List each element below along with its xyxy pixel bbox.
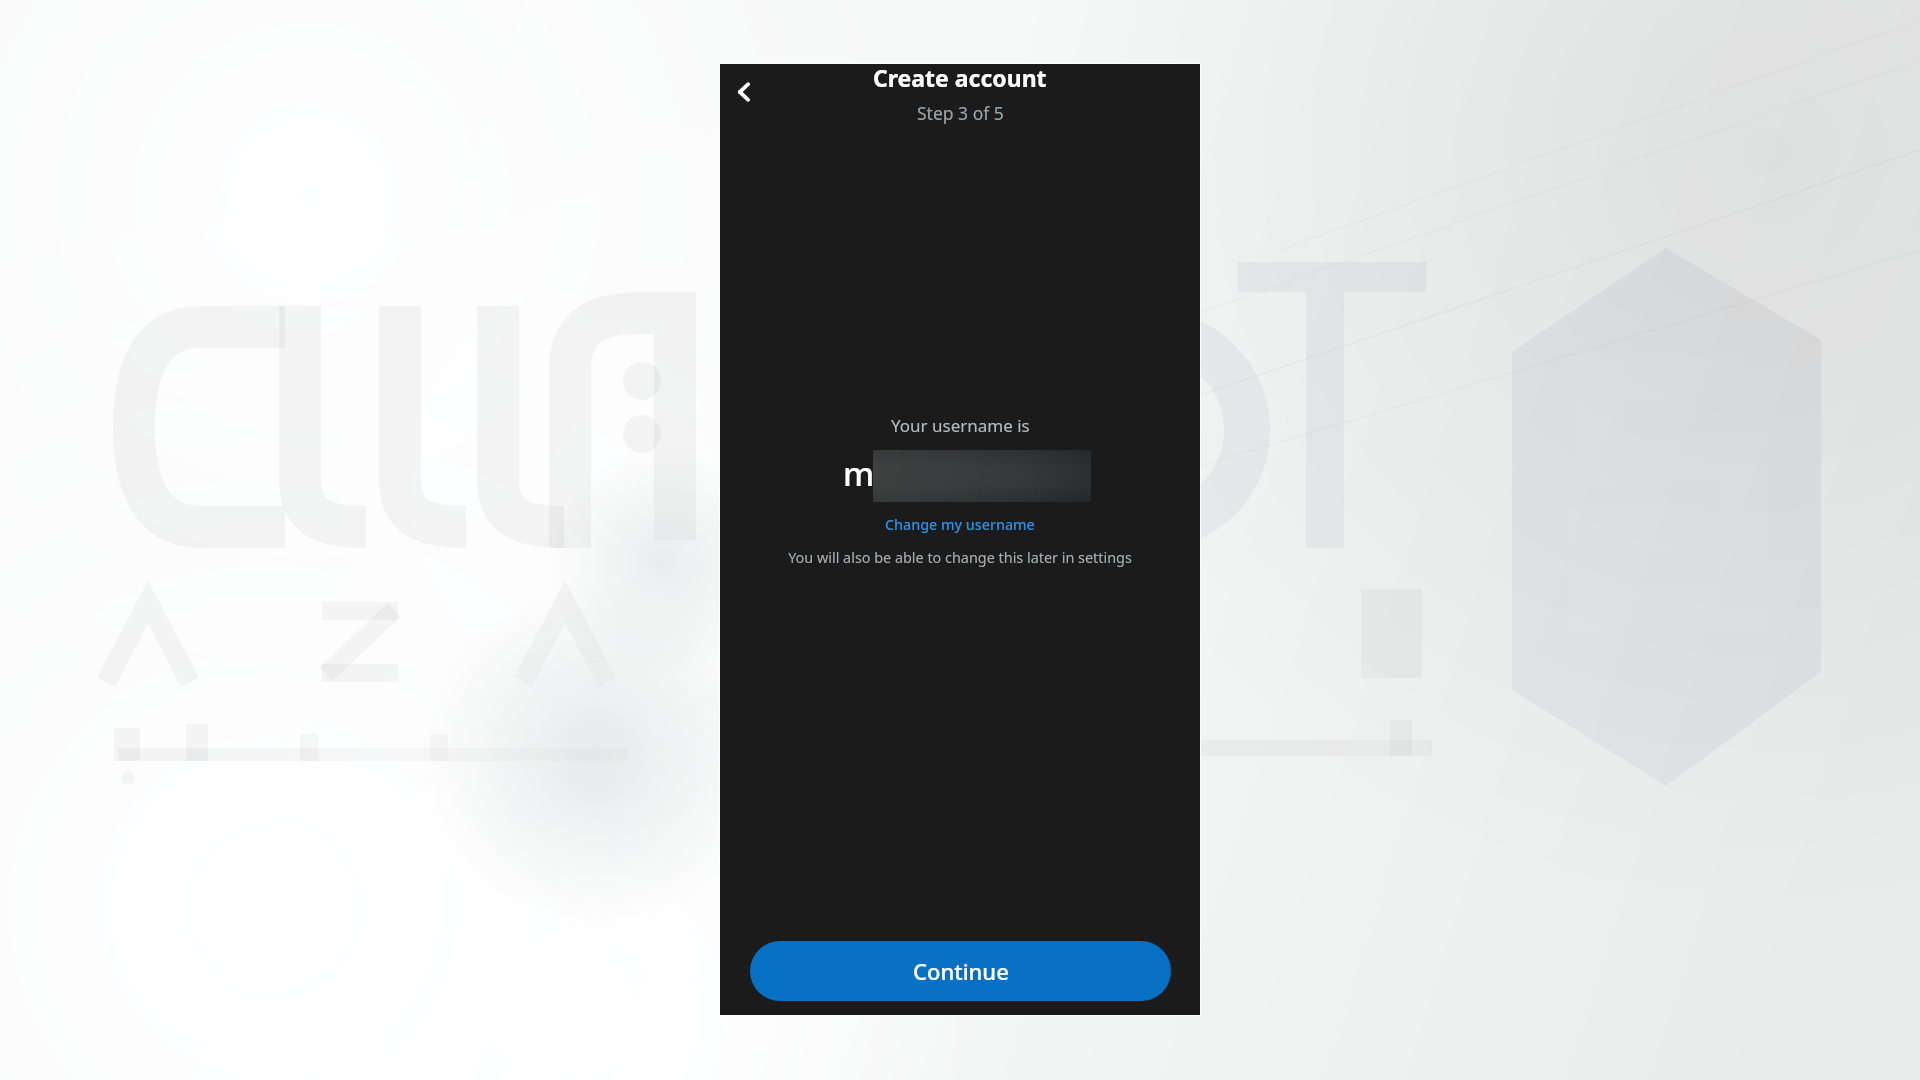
staticText: m	[843, 451, 875, 496]
staticText: Step 3 of 5	[917, 101, 1004, 125]
staticText: Change my username	[885, 515, 1035, 534]
button[interactable]: Change my username	[879, 512, 1041, 537]
button[interactable]: Continue	[750, 941, 1171, 1001]
staticText: You will also be able to change this lat…	[788, 548, 1132, 568]
button[interactable]: Back	[724, 72, 764, 112]
staticText: Create account	[873, 62, 1047, 93]
staticText: Your username is	[891, 414, 1030, 437]
staticText: Continue	[913, 956, 1009, 986]
